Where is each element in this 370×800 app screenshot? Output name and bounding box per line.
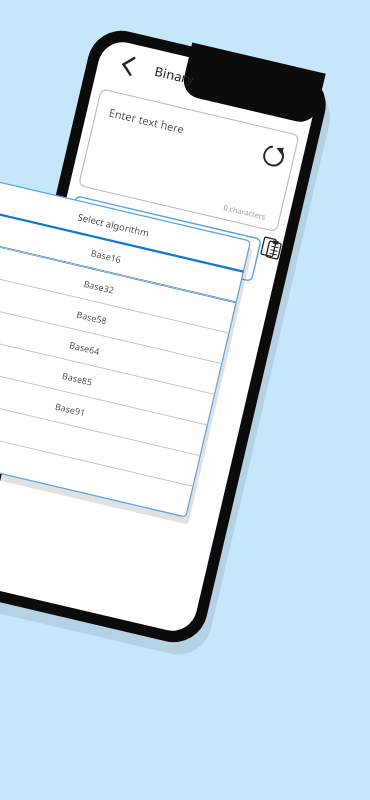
button[interactable]: Paste from clipboard (290, 190, 324, 224)
button[interactable]: Refresh (314, 130, 354, 170)
button[interactable] (4, 298, 262, 330)
button[interactable] (86, 100, 318, 224)
button[interactable] (62, 150, 298, 204)
button[interactable]: Back (96, 42, 130, 76)
button[interactable] (12, 242, 270, 274)
button[interactable] (0, 326, 258, 358)
button[interactable] (8, 270, 266, 302)
button[interactable] (20, 186, 278, 218)
button[interactable] (16, 214, 274, 246)
